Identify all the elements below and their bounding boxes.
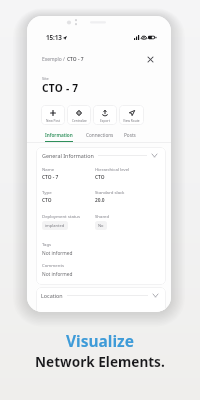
staticText: Type: [42, 189, 52, 195]
staticText: Visualize: [66, 330, 134, 351]
staticText: 15:13: [46, 33, 62, 42]
button[interactable]: Export: [93, 105, 117, 125]
staticText: Comments: [42, 262, 65, 268]
staticText: CTO - 7: [42, 174, 59, 181]
staticText: CTO: [95, 174, 105, 181]
staticText: Information: [45, 132, 73, 138]
staticText: Deployment status: [42, 213, 81, 219]
staticText: CTO - 7: [67, 56, 84, 63]
button[interactable]: Centralize: [67, 105, 91, 125]
staticText: Shared: [95, 213, 110, 219]
button[interactable]: Close: [146, 55, 155, 64]
staticText: Location: [41, 292, 63, 299]
staticText: CTO: [42, 197, 52, 204]
staticText: View Route: [123, 119, 140, 123]
staticText: 20.0: [95, 197, 105, 204]
staticText: General Information: [42, 152, 94, 159]
button[interactable]: Location: [36, 287, 166, 312]
staticText: No: [98, 223, 104, 228]
staticText: Centralize: [72, 119, 87, 123]
staticText: Network Elements.: [35, 352, 165, 371]
staticText: Export: [100, 119, 110, 123]
button[interactable]: New Post: [41, 105, 65, 125]
button[interactable]: Posts: [124, 132, 136, 142]
staticText: Exemplo /: [42, 56, 67, 63]
button[interactable]: Information: [45, 132, 73, 142]
staticText: Site: [42, 76, 49, 81]
staticText: Hierarchical level: [95, 166, 130, 172]
button[interactable]: Connections: [86, 132, 114, 142]
button[interactable]: View Route: [119, 105, 144, 125]
staticText: Tags: [42, 241, 52, 247]
staticText: New Post: [46, 119, 61, 123]
staticText: Standard slack: [95, 189, 125, 195]
staticText: Connections: [86, 132, 114, 138]
staticText: Posts: [124, 132, 136, 138]
staticText: implanted: [45, 223, 65, 228]
staticText: CTO - 7: [42, 81, 79, 95]
staticText: Name: [42, 166, 55, 172]
staticText: Not informed: [42, 250, 73, 257]
staticText: Not informed: [42, 271, 73, 278]
